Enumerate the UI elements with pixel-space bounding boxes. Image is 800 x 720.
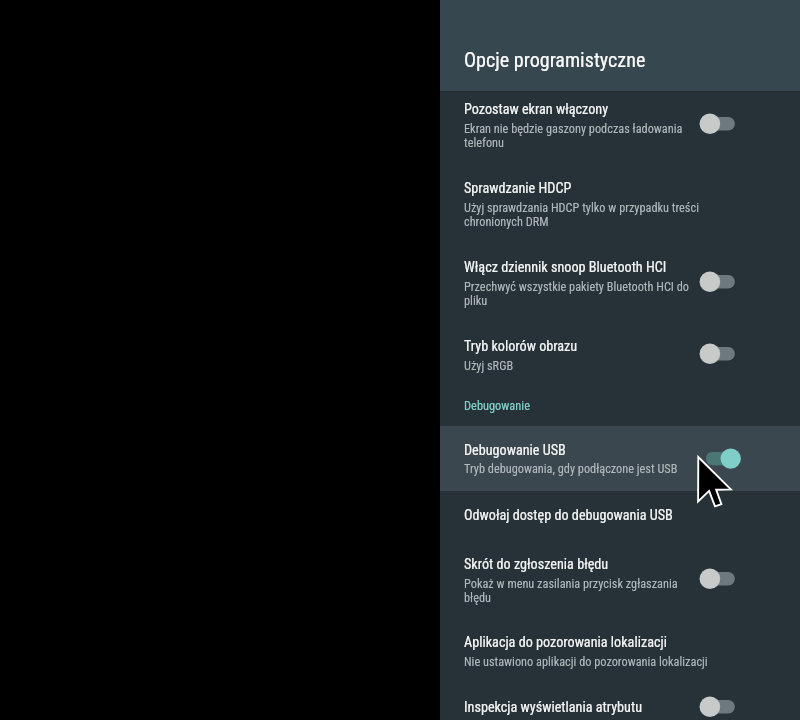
button[interactable]: Skrót do zgłoszenia błędu (440, 537, 800, 616)
staticText: Debugowanie (464, 398, 530, 413)
button[interactable]: Pozostaw ekran włączony, wyłączone (695, 110, 743, 138)
button[interactable]: Aplikacja do pozorowania lokalizacji (440, 616, 800, 677)
staticText: Opcje programistyczne (464, 48, 646, 72)
staticText: Pokaż w menu zasilania przycisk zgłaszan… (464, 577, 696, 605)
staticText: Pozostaw ekran włączony (464, 101, 609, 118)
button[interactable]: Debugowanie USB (440, 426, 800, 491)
staticText: Ekran nie będzie gaszony podczas ładowan… (464, 122, 696, 150)
button[interactable]: Inspekcja wyświetlania atrybutu (440, 677, 800, 720)
staticText: Debugowanie USB (464, 442, 566, 459)
button[interactable]: Tryb kolorów obrazu (440, 328, 800, 389)
staticText: Aplikacja do pozorowania lokalizacji (464, 634, 667, 651)
button[interactable]: Tryb kolorów obrazu, wyłączone (695, 340, 743, 368)
staticText: Inspekcja wyświetlania atrybutu (464, 699, 642, 716)
button[interactable]: Debugowanie USB, włączone (695, 445, 743, 473)
staticText: Użyj sprawdzania HDCP tylko w przypadku … (464, 201, 702, 229)
button[interactable]: Sprawdzanie HDCP (440, 170, 800, 249)
button[interactable]: Inspekcja wyświetlania atrybutu, wyłączo… (695, 693, 743, 720)
staticText: Tryb kolorów obrazu (464, 338, 578, 355)
button[interactable]: Pozostaw ekran włączony (440, 91, 800, 170)
staticText: Sprawdzanie HDCP (464, 180, 572, 197)
button[interactable]: Odwołaj dostęp do debugowania USB (440, 491, 800, 537)
staticText: Skrót do zgłoszenia błędu (464, 556, 609, 573)
staticText: Odwołaj dostęp do debugowania USB (464, 507, 673, 524)
staticText: Nie ustawiono aplikacji do pozorowania l… (464, 655, 734, 669)
staticText: Tryb debugowania, gdy podłączone jest US… (464, 462, 696, 476)
staticText: Przechwyć wszystkie pakiety Bluetooth HC… (464, 280, 696, 308)
button[interactable]: Włącz dziennik snoop Bluetooth HCI (440, 249, 800, 328)
button[interactable]: Włącz dziennik snoop Bluetooth HCI, wyłą… (695, 268, 743, 296)
staticText: Włącz dziennik snoop Bluetooth HCI (464, 259, 667, 276)
button[interactable]: Skrót do zgłoszenia błędu, wyłączone (695, 565, 743, 593)
staticText: Użyj sRGB (464, 359, 696, 373)
